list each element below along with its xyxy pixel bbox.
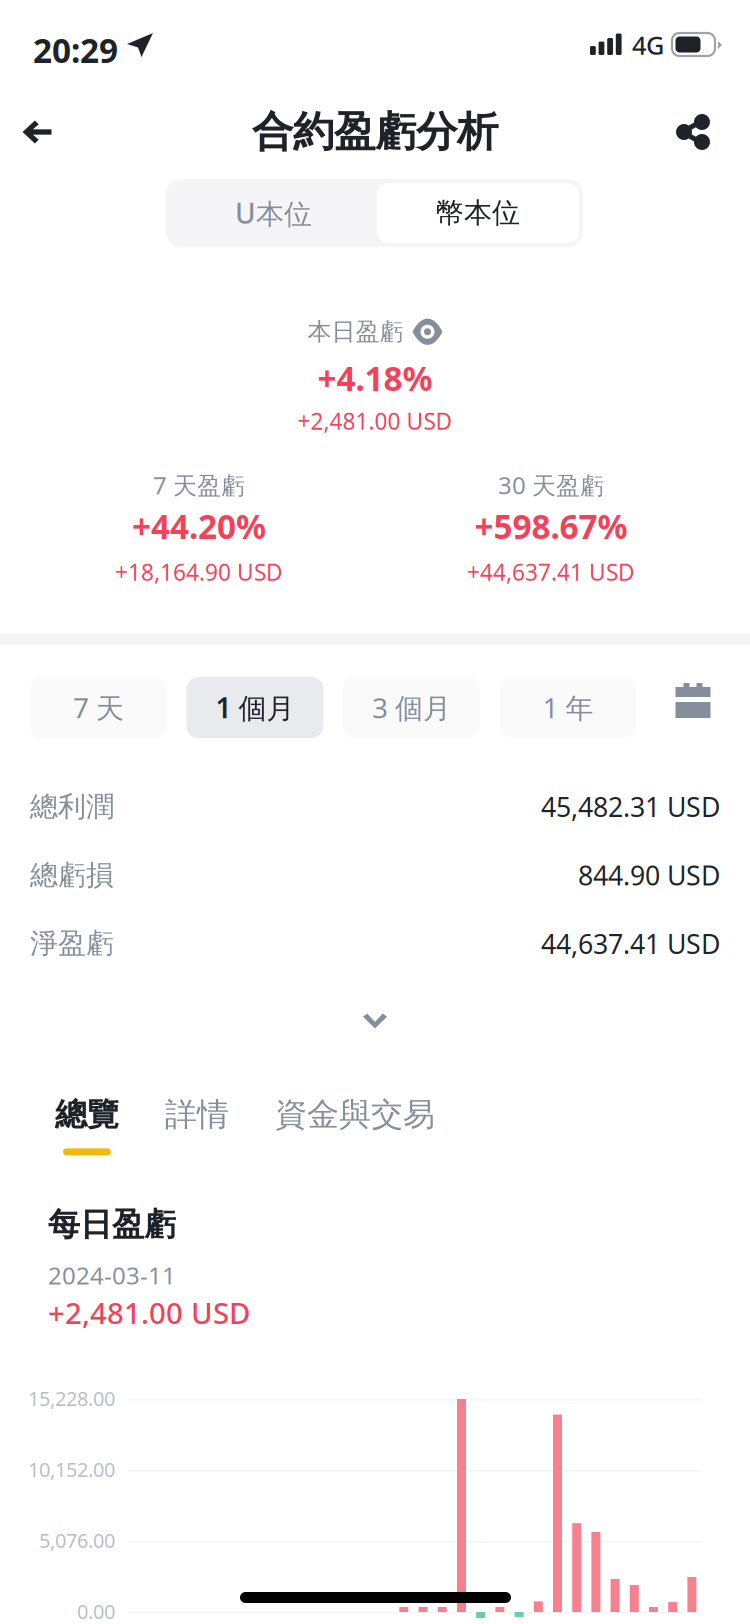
- button[interactable]: 1 年: [499, 677, 636, 738]
- staticText: 資金與交易: [275, 1095, 435, 1134]
- staticText: 4G: [632, 28, 664, 62]
- staticText: 7 天盈虧: [153, 469, 245, 501]
- staticText: 淨盈虧: [30, 926, 114, 961]
- button[interactable]: 資金與交易: [229, 1095, 435, 1134]
- staticText: 7 天: [73, 689, 124, 726]
- staticText: +598.67%: [474, 504, 627, 548]
- button[interactable]: 本日盈虧: [307, 317, 442, 346]
- button[interactable]: 1 個月: [186, 677, 323, 738]
- staticText: 0.00: [77, 1598, 115, 1624]
- staticText: 詳情: [165, 1095, 229, 1134]
- staticText: 總覽: [55, 1095, 119, 1134]
- staticText: +4.18%: [317, 356, 432, 400]
- button[interactable]: 幣本位: [377, 183, 579, 243]
- staticText: 總虧損: [30, 858, 114, 892]
- staticText: +2,481.00 USD: [297, 406, 452, 436]
- staticText: 2024-03-11: [48, 1259, 176, 1291]
- staticText: +2,481.00 USD: [48, 1293, 250, 1332]
- staticText: 1 個月: [215, 689, 294, 726]
- button[interactable]: Calendar: [656, 677, 716, 738]
- button[interactable]: 7 天: [30, 677, 167, 738]
- staticText: 5,076.00: [39, 1527, 115, 1554]
- staticText: 幣本位: [436, 196, 520, 230]
- button[interactable]: Share: [658, 97, 728, 167]
- staticText: 總利潤: [30, 789, 114, 824]
- button[interactable]: U本位: [170, 183, 377, 243]
- staticText: 45,482.31 USD: [541, 789, 720, 824]
- staticText: 20:29: [33, 28, 118, 72]
- staticText: 3 個月: [372, 689, 451, 726]
- staticText: 本日盈虧: [307, 317, 403, 346]
- staticText: 44,637.41 USD: [541, 926, 720, 961]
- button[interactable]: 3 個月: [343, 677, 480, 738]
- button[interactable]: Back: [2, 97, 72, 167]
- staticText: +18,164.90 USD: [115, 557, 283, 587]
- button[interactable]: 詳情: [119, 1095, 229, 1134]
- staticText: 每日盈虧: [48, 1205, 176, 1244]
- button[interactable]: Expand: [330, 996, 420, 1046]
- staticText: +44,637.41 USD: [467, 557, 635, 587]
- staticText: 30 天盈虧: [498, 469, 604, 501]
- staticText: 10,152.00: [28, 1456, 115, 1483]
- staticText: 15,228.00: [28, 1385, 115, 1412]
- staticText: +44.20%: [132, 504, 266, 548]
- staticText: 844.90 USD: [578, 857, 720, 893]
- staticText: U本位: [235, 194, 312, 232]
- button[interactable]: 總覽: [55, 1095, 119, 1155]
- staticText: 1 年: [542, 689, 593, 726]
- staticText: 合約盈虧分析: [252, 107, 498, 157]
